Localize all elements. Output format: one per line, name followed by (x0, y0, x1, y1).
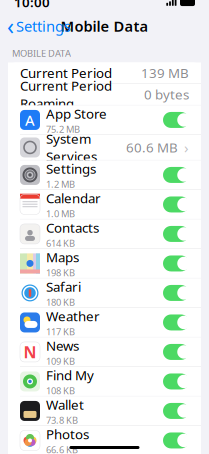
button[interactable]: Maps (8, 249, 201, 278)
staticText: 198 KB (46, 266, 75, 279)
staticText: Find My (46, 366, 94, 384)
staticText: A (25, 110, 35, 130)
button[interactable]: Weather (8, 308, 201, 337)
button[interactable]: ‹ (0, 13, 78, 39)
staticText: 139 MB (141, 64, 189, 82)
button[interactable]: Wallet (8, 396, 201, 425)
staticText: Contacts (46, 219, 99, 236)
button[interactable]: Photos (8, 426, 201, 454)
staticText: 614 KB (46, 237, 75, 249)
staticText: MOBILE DATA (12, 47, 71, 59)
staticText: System Services (46, 130, 97, 165)
staticText: 66.6 KB (46, 443, 78, 454)
button[interactable]: Current Period Roaming (8, 84, 201, 105)
staticText: App Store (46, 105, 107, 122)
staticText: News (46, 337, 79, 354)
button[interactable]: Contacts (8, 219, 201, 248)
staticText: Maps (46, 248, 79, 266)
staticText: Safari (46, 278, 81, 295)
button[interactable]: System Services (8, 135, 201, 160)
staticText: Current Period (20, 64, 112, 82)
staticText: 109 KB (46, 355, 75, 367)
button[interactable]: Calendar (8, 190, 201, 219)
staticText: Photos (46, 425, 89, 443)
staticText: Calendar (46, 189, 101, 207)
staticText: 1.0 MB (46, 207, 75, 220)
button[interactable]: Find My (8, 367, 201, 396)
staticText: N (23, 341, 36, 362)
button[interactable]: Current Period (8, 62, 201, 83)
staticText: 73.8 KB (46, 414, 78, 426)
staticText: Settings (16, 16, 71, 36)
staticText: › (184, 138, 189, 157)
staticText: 1.2 MB (46, 178, 75, 190)
button[interactable]: N (8, 337, 201, 366)
staticText: 108 KB (46, 384, 75, 397)
staticText: Wallet (46, 396, 84, 413)
staticText: 180 KB (46, 296, 75, 308)
staticText: 117 KB (46, 325, 75, 338)
staticText: Current Period Roaming (20, 77, 112, 112)
staticText: 10:00 (14, 0, 50, 11)
button[interactable]: Safari (8, 278, 201, 307)
staticText: ‹ (7, 11, 14, 41)
staticText: 0 bytes (144, 86, 189, 103)
staticText: 75.2 MB (46, 123, 80, 135)
staticText: Weather (46, 307, 100, 325)
staticText: Settings (46, 160, 96, 177)
staticText: Mobile Data (60, 16, 148, 36)
staticText: 60.6 MB (126, 139, 178, 156)
button[interactable]: Settings (8, 160, 201, 189)
button[interactable]: A (8, 105, 201, 134)
